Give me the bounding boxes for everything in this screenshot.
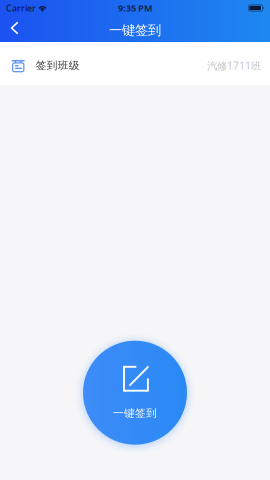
staticText: 签到班级	[36, 59, 80, 72]
staticText: 9:35 PM	[118, 2, 152, 14]
staticText: 汽修1711班	[207, 59, 261, 72]
button[interactable]: Back	[0, 16, 40, 40]
staticText: 一键签到	[109, 22, 161, 38]
button[interactable]: 签到班级	[0, 42, 270, 85]
button[interactable]: 一键签到	[77, 335, 193, 451]
staticText: Carrier	[6, 2, 36, 14]
staticText: 一键签到	[113, 407, 157, 420]
